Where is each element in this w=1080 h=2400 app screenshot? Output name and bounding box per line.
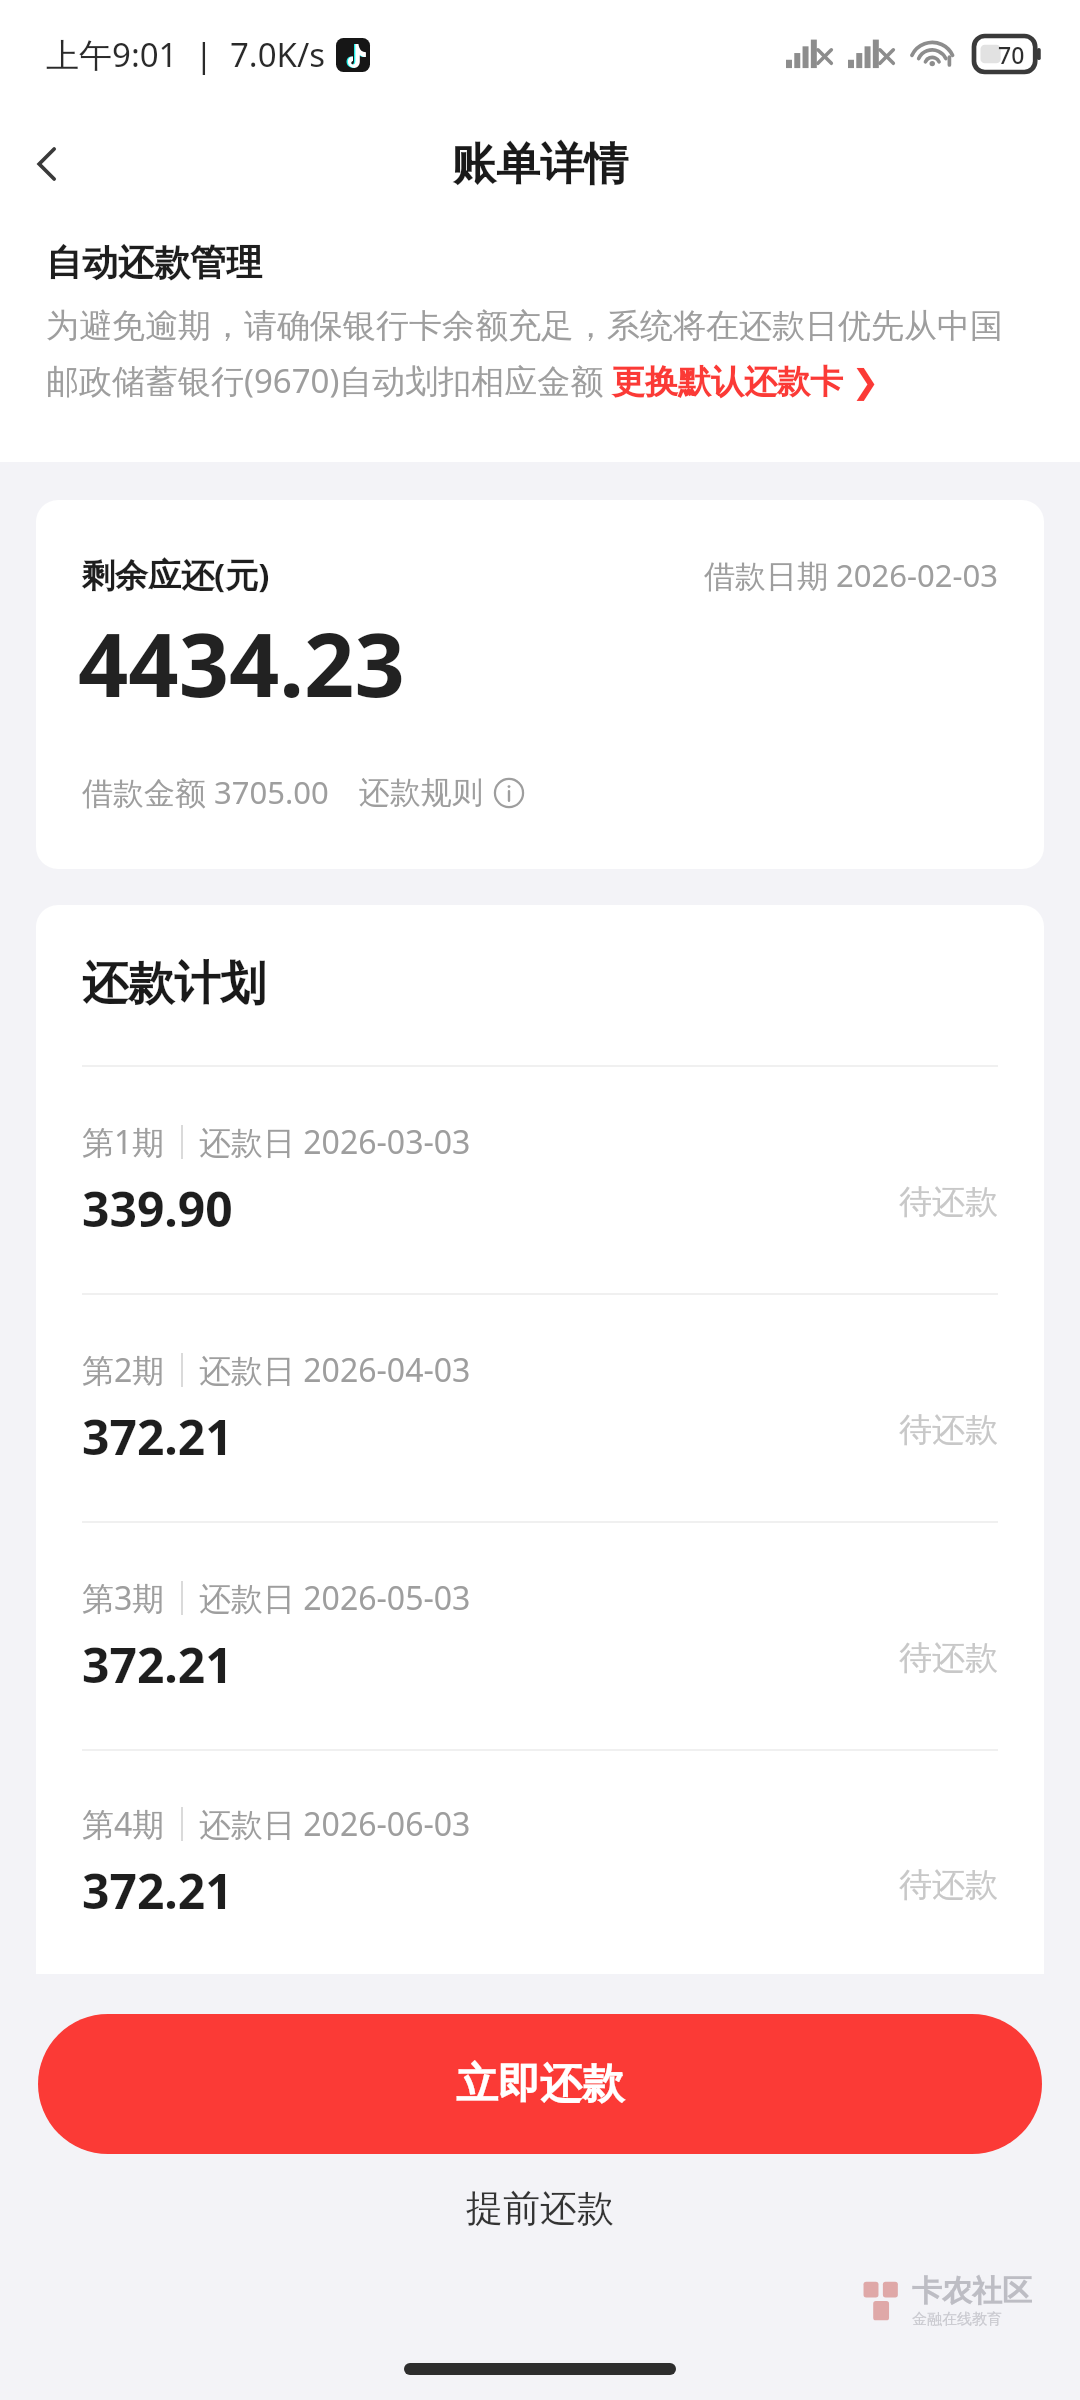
button[interactable]: 第2期 (36, 1295, 1044, 1521)
staticText: 账单详情 (452, 137, 628, 192)
staticText: 第3期 (82, 1576, 165, 1620)
button[interactable]: 返回 (0, 116, 96, 212)
staticText: 借款金额 3705.00 (82, 771, 329, 813)
staticText: 借款日期 2026-02-03 (704, 554, 998, 596)
staticText: 339.90 (82, 1176, 233, 1241)
staticText: 70 (998, 39, 1025, 70)
staticText: 还款日 2026-06-03 (199, 1802, 471, 1846)
button[interactable]: 立即还款 (38, 2014, 1042, 2154)
staticText: 第4期 (82, 1802, 165, 1846)
staticText: 自动还款管理 (46, 240, 262, 285)
button[interactable]: 提前还款 (0, 2154, 1080, 2262)
staticText: 372.21 (82, 1404, 233, 1469)
staticText: 第1期 (82, 1120, 165, 1164)
button[interactable]: 为避免逾期，请确保银行卡余额充足，系统将在还款日优先从中国邮政储蓄银行(9670… (46, 305, 1034, 403)
staticText: 还款规则 (359, 773, 483, 812)
staticText: 待还款 (899, 1181, 998, 1223)
staticText: 还款日 2026-04-03 (199, 1348, 471, 1392)
staticText: 还款计划 (82, 955, 266, 1013)
button[interactable]: 第4期 (36, 1751, 1044, 1974)
staticText: 立即还款 (456, 2058, 624, 2111)
button[interactable]: 剩余应还(元) (36, 500, 1044, 869)
staticText: 上午9:01 | 7.0K/s (46, 32, 326, 77)
staticText: 372.21 (82, 1858, 233, 1923)
staticText: 待还款 (899, 1864, 998, 1906)
staticText: 剩余应还(元) (82, 552, 270, 597)
staticText: 第2期 (82, 1348, 165, 1392)
staticText: 卡农社区 (912, 2272, 1032, 2310)
staticText: 待还款 (899, 1409, 998, 1451)
staticText: 提前还款 (466, 2185, 614, 2232)
staticText: 还款日 2026-03-03 (199, 1120, 471, 1164)
button[interactable]: 第3期 (36, 1523, 1044, 1749)
staticText: 还款日 2026-05-03 (199, 1576, 471, 1620)
staticText: 待还款 (899, 1637, 998, 1679)
staticText: 372.21 (82, 1632, 233, 1697)
button[interactable]: 第1期 (36, 1067, 1044, 1293)
button[interactable]: 还款规则 (359, 773, 525, 812)
staticText: 金融在线教育 (912, 2310, 1002, 2329)
staticText: 4434.23 (78, 603, 405, 723)
